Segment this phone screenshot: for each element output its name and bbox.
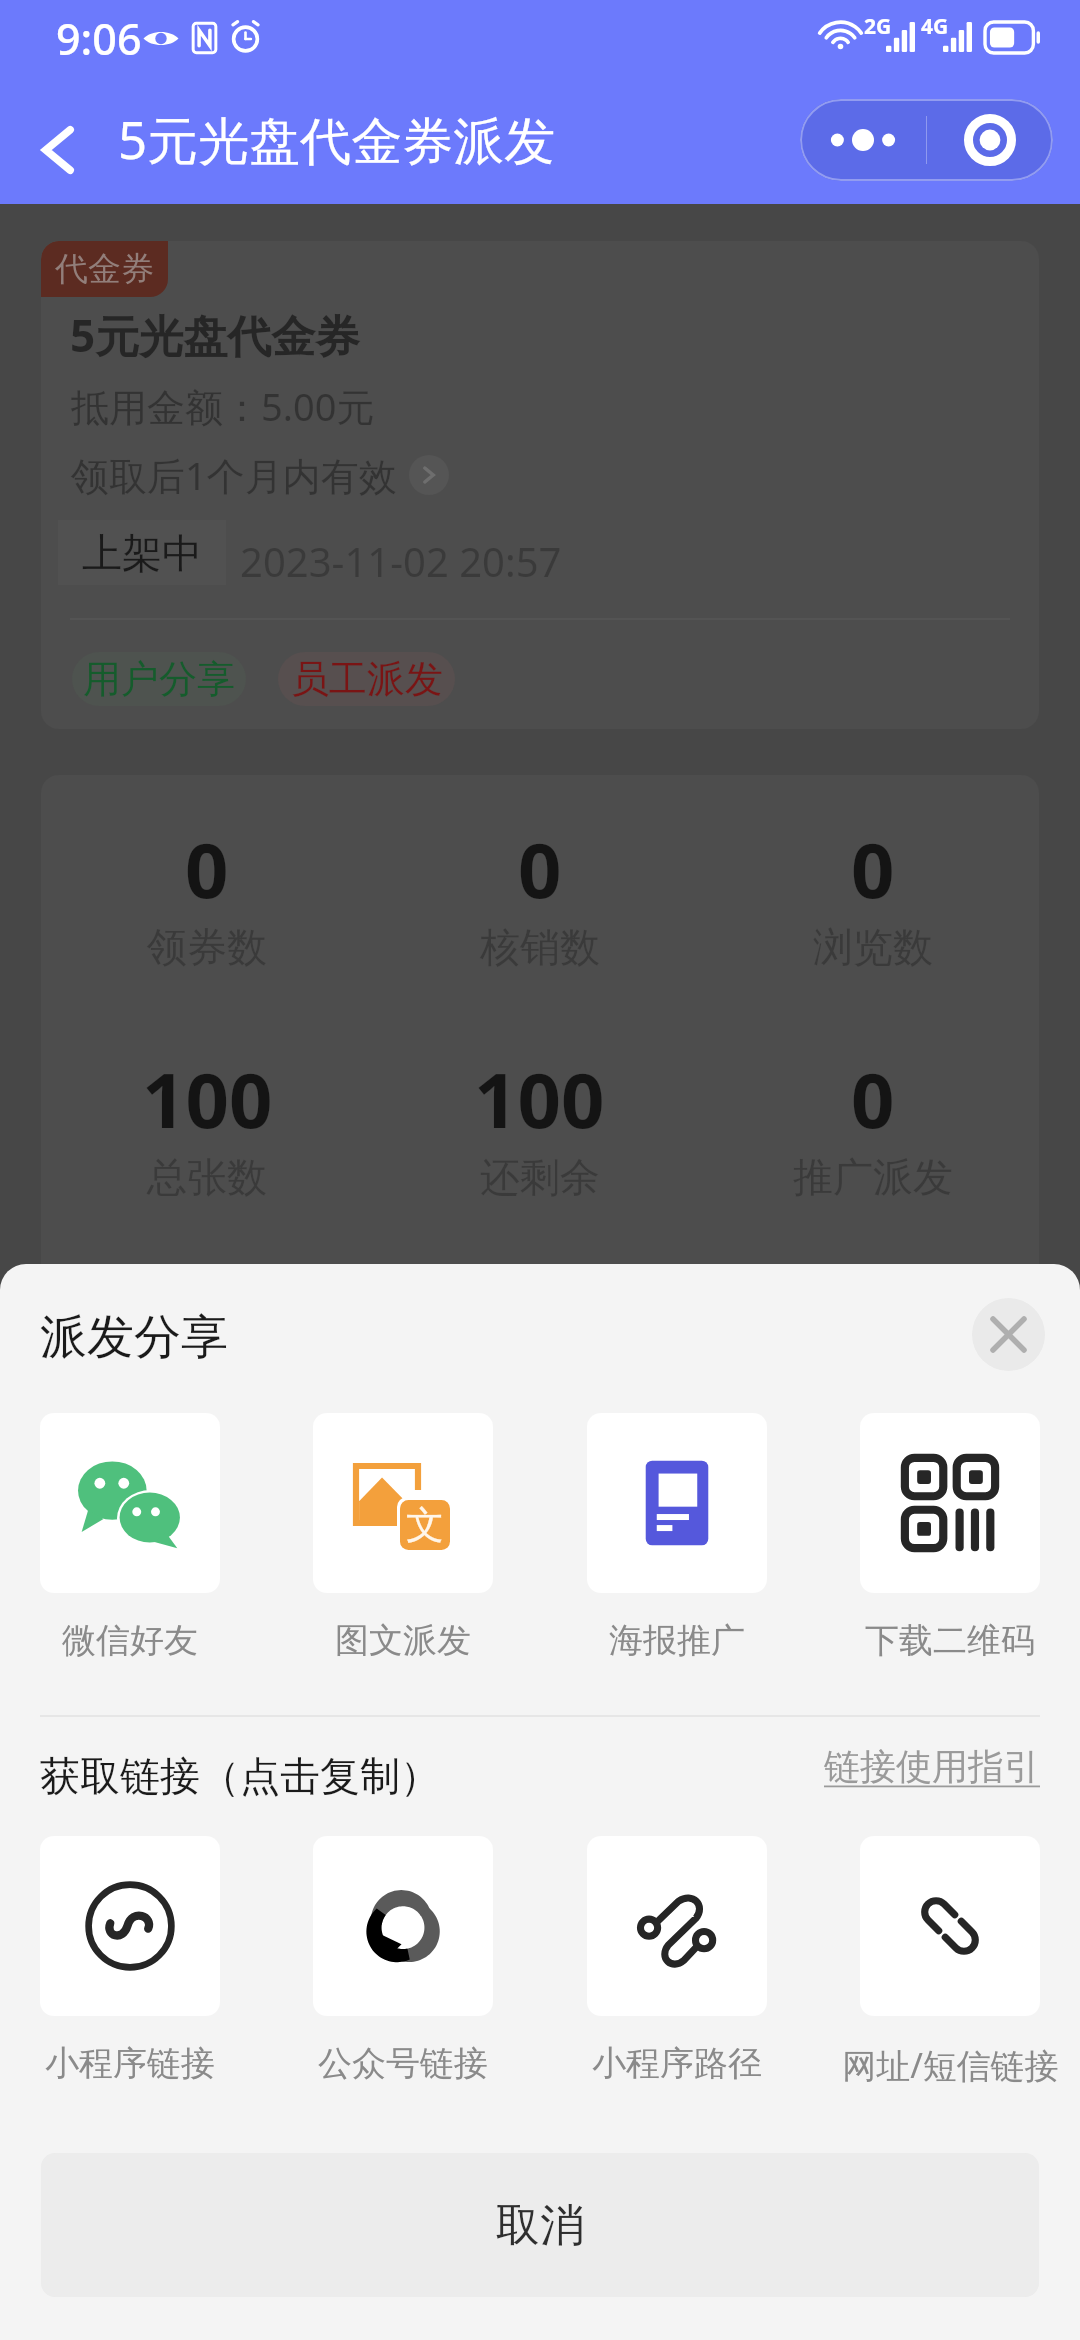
staticText: 浏览数 xyxy=(813,922,933,972)
button[interactable]: 海报推广 xyxy=(587,1413,767,1662)
staticText: 0 xyxy=(851,817,895,921)
button[interactable]: More xyxy=(800,99,926,181)
staticText: 取消 xyxy=(496,2198,584,2253)
button[interactable]: 小程序链接 xyxy=(40,1836,220,2085)
staticText: 用户分享 xyxy=(83,655,235,703)
button[interactable]: 网址/短信链接 xyxy=(860,1836,1040,2088)
staticText: 0 xyxy=(185,817,229,921)
staticText: 网址/短信链接 xyxy=(842,2042,1059,2088)
staticText: 100 xyxy=(142,1047,273,1151)
staticText: 0 xyxy=(851,1047,895,1151)
staticText: 还剩余 xyxy=(480,1152,600,1202)
button[interactable]: 员工派发 xyxy=(278,652,455,706)
button[interactable]: 链接使用指引 xyxy=(820,1744,1040,1789)
staticText: 图文派发 xyxy=(335,1619,471,1662)
button[interactable]: 下载二维码 xyxy=(860,1413,1040,1662)
staticText: 5元光盘代金券 xyxy=(70,305,360,365)
staticText: 派发分享 xyxy=(40,1308,228,1367)
staticText: 2023-11-02 20:57 xyxy=(240,534,562,588)
staticText: 核销数 xyxy=(480,922,600,972)
staticText: 领取后1个月内有效 xyxy=(71,449,397,501)
staticText: 上架中 xyxy=(82,528,202,578)
staticText: 总张数 xyxy=(147,1152,267,1202)
staticText: 海报推广 xyxy=(609,1619,745,1662)
staticText: 小程序链接 xyxy=(45,2042,215,2085)
button[interactable]: 公众号链接 xyxy=(313,1836,493,2085)
staticText: 代金券 xyxy=(55,248,154,290)
button[interactable]: 文 xyxy=(313,1413,493,1662)
button[interactable]: Close xyxy=(972,1298,1045,1371)
staticText: 链接使用指引 xyxy=(824,1744,1040,1789)
staticText: 微信好友 xyxy=(62,1619,198,1662)
staticText: 推广派发 xyxy=(793,1152,953,1202)
staticText: 公众号链接 xyxy=(318,2042,488,2085)
button[interactable]: 用户分享 xyxy=(72,652,246,706)
staticText: 2G xyxy=(864,12,892,41)
staticText: 4G xyxy=(921,12,949,41)
button[interactable]: 小程序路径 xyxy=(587,1836,767,2085)
staticText: 文 xyxy=(406,1501,444,1549)
staticText: 9:06 xyxy=(56,9,142,68)
staticText: 员工派发 xyxy=(291,655,443,703)
staticText: 小程序路径 xyxy=(592,2042,762,2085)
button[interactable]: 取消 xyxy=(41,2153,1039,2297)
staticText: 100 xyxy=(474,1047,605,1151)
staticText: 获取链接（点击复制） xyxy=(40,1751,440,1801)
staticText: 5元光盘代金券派发 xyxy=(118,104,556,174)
staticText: 领券数 xyxy=(147,922,267,972)
staticText: 抵用金额：5.00元 xyxy=(71,380,375,432)
button[interactable]: Close mini program xyxy=(927,99,1053,181)
staticText: 下载二维码 xyxy=(865,1619,1035,1662)
staticText: 0 xyxy=(518,817,562,921)
button[interactable]: Back xyxy=(24,96,92,204)
button[interactable]: 微信好友 xyxy=(40,1413,220,1662)
